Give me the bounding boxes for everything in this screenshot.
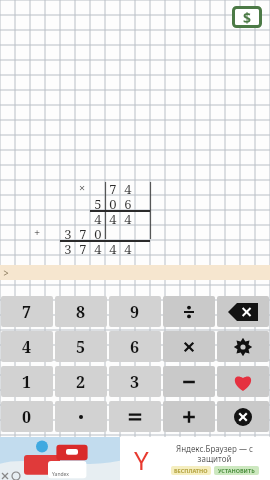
- staticText: 9: [130, 301, 140, 323]
- button[interactable]: Subtract: [163, 366, 215, 397]
- button[interactable]: Settings: [217, 331, 269, 362]
- button[interactable]: 2: [55, 366, 107, 397]
- button[interactable]: 7: [1, 296, 53, 327]
- staticText: 4: [109, 240, 117, 255]
- staticText: УСТАНОВИТЬ: [218, 467, 255, 474]
- staticText: 4: [94, 240, 102, 255]
- staticText: Яндекс.Браузер — с защитой: [176, 443, 253, 464]
- staticText: 4: [109, 210, 117, 225]
- button[interactable]: 1: [1, 366, 53, 397]
- button[interactable]: Close: [217, 401, 269, 432]
- button[interactable]: Equals: [109, 401, 161, 432]
- staticText: 7: [79, 225, 87, 240]
- button[interactable]: Favorites: [217, 366, 269, 397]
- button[interactable]: Decimal point: [55, 401, 107, 432]
- button[interactable]: Multiply: [163, 331, 215, 362]
- staticText: 2: [76, 371, 86, 393]
- staticText: 0: [22, 406, 32, 428]
- staticText: ×: [79, 180, 86, 195]
- staticText: 7: [22, 301, 32, 323]
- staticText: 3: [64, 225, 72, 240]
- staticText: 7: [109, 180, 117, 195]
- button[interactable]: 3: [109, 366, 161, 397]
- staticText: 4: [124, 240, 132, 255]
- button[interactable]: >: [0, 265, 270, 280]
- staticText: БЕСПЛАТНО: [174, 467, 208, 474]
- staticText: 3: [64, 240, 72, 255]
- button[interactable]: Remove ads: [232, 6, 262, 28]
- staticText: Y: [134, 442, 149, 476]
- button[interactable]: 4: [1, 331, 53, 362]
- staticText: 7: [79, 240, 87, 255]
- button[interactable]: 8: [55, 296, 107, 327]
- button[interactable]: 9: [109, 296, 161, 327]
- button[interactable]: Yandex: [0, 437, 270, 480]
- button[interactable]: 6: [109, 331, 161, 362]
- staticText: $: [243, 8, 252, 27]
- staticText: 4: [22, 336, 32, 358]
- staticText: >: [3, 266, 9, 280]
- staticText: 5: [94, 195, 102, 210]
- staticText: 4: [124, 180, 132, 195]
- staticText: 4: [124, 210, 132, 225]
- staticText: 0: [109, 195, 117, 210]
- staticText: 0: [94, 225, 102, 240]
- staticText: 1: [22, 371, 32, 393]
- staticText: 6: [124, 195, 132, 210]
- button[interactable]: Backspace: [217, 296, 269, 327]
- button[interactable]: УСТАНОВИТЬ: [218, 467, 255, 474]
- staticText: 5: [76, 336, 86, 358]
- button[interactable]: Add: [163, 401, 215, 432]
- staticText: 3: [130, 371, 140, 393]
- staticText: 4: [94, 210, 102, 225]
- staticText: 6: [130, 336, 140, 358]
- staticText: 8: [76, 301, 86, 323]
- staticText: +: [34, 225, 41, 240]
- button[interactable]: 0: [1, 401, 53, 432]
- button[interactable]: 5: [55, 331, 107, 362]
- button[interactable]: Divide: [163, 296, 215, 327]
- staticText: Yandex: [52, 471, 69, 478]
